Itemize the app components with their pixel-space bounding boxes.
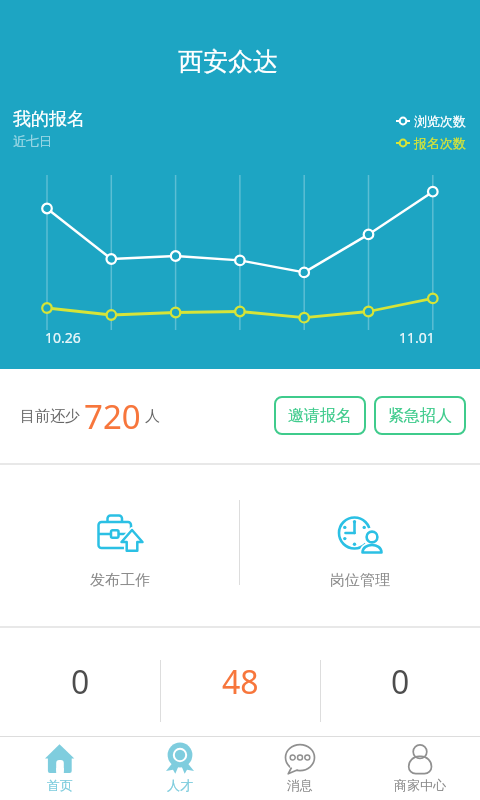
button[interactable]: 消息 — [240, 737, 360, 800]
staticText: 我的报名 — [13, 108, 85, 131]
staticText: 商家中心 — [394, 777, 446, 793]
button[interactable]: 人才 — [120, 737, 240, 800]
staticText: 48 — [222, 660, 259, 704]
staticText: 发布工作 — [90, 571, 150, 589]
staticText: 首页 — [47, 777, 73, 793]
staticText: 报名次数 — [414, 135, 466, 151]
staticText: 西安众达 — [178, 46, 278, 76]
staticText: 岗位管理 — [330, 571, 390, 589]
staticText: 消息 — [287, 777, 313, 793]
staticText: 人 — [145, 407, 160, 426]
button[interactable]: 岗位管理 — [240, 465, 480, 626]
staticText: 10.26 — [45, 328, 81, 347]
staticText: 720 — [84, 394, 141, 439]
staticText: 紧急招人 — [388, 406, 452, 426]
staticText: 0 — [391, 660, 410, 704]
staticText: 0 — [71, 660, 90, 704]
button[interactable]: 紧急招人 — [374, 396, 466, 435]
staticText: 目前还少 — [20, 407, 80, 426]
staticText: 邀请报名 — [288, 406, 352, 426]
button[interactable]: 0 — [0, 627, 160, 736]
button[interactable]: 0 — [320, 627, 480, 736]
button[interactable]: 48 — [160, 627, 320, 736]
staticText: 浏览次数 — [414, 113, 466, 129]
staticText: 近七日 — [13, 133, 52, 149]
button[interactable]: 首页 — [0, 737, 120, 800]
button[interactable]: 邀请报名 — [274, 396, 366, 435]
button[interactable]: 商家中心 — [360, 737, 480, 800]
staticText: 人才 — [167, 777, 193, 793]
staticText: 11.01 — [399, 328, 435, 347]
button[interactable]: 发布工作 — [0, 465, 240, 626]
